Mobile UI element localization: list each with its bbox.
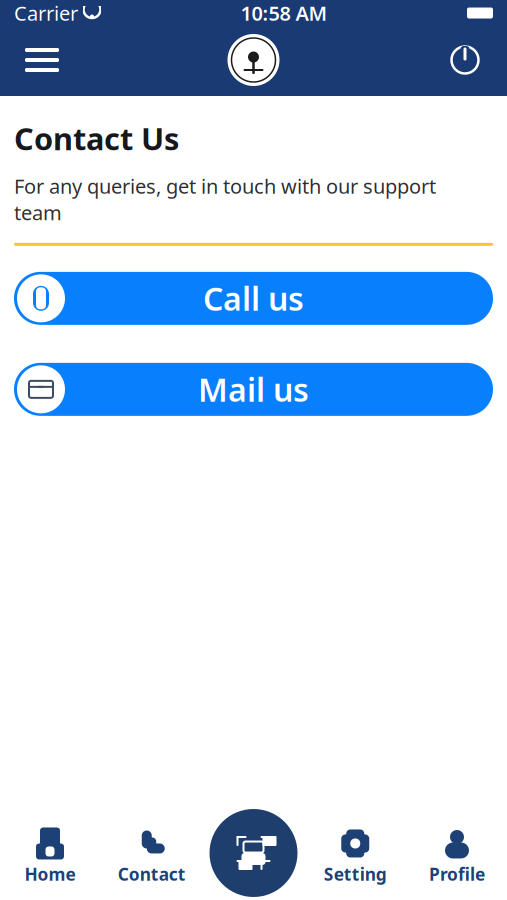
staticText: Home: [24, 862, 75, 885]
staticText: Mail us: [198, 368, 309, 411]
staticText: Profile: [429, 862, 485, 885]
button[interactable]: Menu: [14, 32, 70, 88]
staticText: For any queries, get in touch with our s…: [14, 173, 436, 226]
button[interactable]: Profile: [415, 826, 499, 888]
button[interactable]: Contact: [110, 826, 194, 888]
button[interactable]: Call us: [14, 272, 493, 325]
staticText: Contact Us: [14, 118, 179, 159]
button[interactable]: Home: [8, 826, 92, 888]
staticText: Carrier: [14, 0, 78, 26]
button[interactable]: Scan: [209, 809, 297, 897]
button[interactable]: Power: [437, 32, 493, 88]
staticText: Contact: [118, 862, 186, 885]
staticText: Call us: [203, 277, 304, 320]
button[interactable]: Setting: [313, 826, 397, 888]
button[interactable]: Mail us: [14, 363, 493, 416]
staticText: Setting: [324, 862, 387, 885]
staticText: 10:58 AM: [240, 0, 327, 26]
